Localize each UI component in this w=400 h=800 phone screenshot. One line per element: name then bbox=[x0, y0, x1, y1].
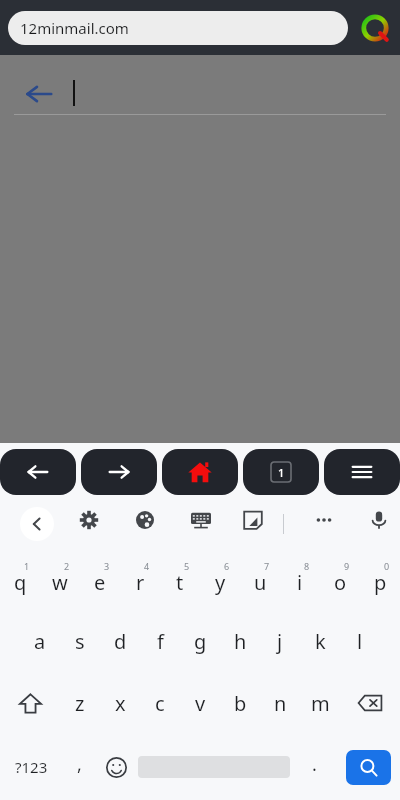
staticText: a bbox=[34, 628, 46, 655]
button[interactable]: 0 bbox=[360, 548, 400, 610]
staticText: g bbox=[194, 628, 207, 655]
button[interactable]: m bbox=[300, 672, 340, 734]
staticText: j bbox=[277, 628, 283, 655]
staticText: 3 bbox=[104, 560, 110, 572]
button[interactable]: . bbox=[292, 734, 336, 800]
staticText: 5 bbox=[184, 560, 190, 572]
button[interactable]: h bbox=[220, 610, 260, 672]
button[interactable]: 8 bbox=[280, 548, 320, 610]
staticText: d bbox=[114, 628, 127, 655]
button[interactable]: 9 bbox=[320, 548, 360, 610]
button[interactable]: n bbox=[260, 672, 300, 734]
button[interactable]: 4 bbox=[120, 548, 160, 610]
button[interactable]: Forward bbox=[81, 449, 157, 495]
button[interactable]: 7 bbox=[240, 548, 280, 610]
button[interactable]: Keyboard layout bbox=[184, 500, 218, 540]
staticText: r bbox=[136, 569, 145, 596]
button[interactable]: l bbox=[340, 610, 380, 672]
button[interactable]: Space bbox=[136, 734, 292, 800]
button[interactable]: Shift bbox=[0, 672, 60, 734]
button[interactable]: s bbox=[60, 610, 100, 672]
button[interactable]: f bbox=[140, 610, 180, 672]
button[interactable]: Resize bbox=[236, 500, 270, 540]
button[interactable]: 5 bbox=[160, 548, 200, 610]
button[interactable]: 3 bbox=[80, 548, 120, 610]
staticText: ?123 bbox=[15, 757, 48, 777]
staticText: p bbox=[374, 569, 387, 596]
staticText: i bbox=[297, 569, 303, 596]
button[interactable]: Back bbox=[22, 77, 56, 111]
button[interactable]: 2 bbox=[40, 548, 80, 610]
button[interactable]: 12minmail.com bbox=[8, 11, 348, 45]
button[interactable]: Previous bbox=[20, 507, 54, 541]
button[interactable]: Search bbox=[346, 750, 391, 785]
staticText: z bbox=[75, 690, 85, 717]
staticText: 2 bbox=[64, 560, 70, 572]
staticText: t bbox=[176, 569, 184, 596]
button[interactable]: , bbox=[62, 734, 96, 800]
staticText: m bbox=[311, 690, 330, 717]
button[interactable]: x bbox=[100, 672, 140, 734]
button[interactable]: z bbox=[60, 672, 100, 734]
button[interactable]: ?123 bbox=[0, 734, 62, 800]
staticText: v bbox=[195, 690, 206, 717]
staticText: 6 bbox=[224, 560, 230, 572]
button[interactable]: b bbox=[220, 672, 260, 734]
staticText: u bbox=[254, 569, 267, 596]
staticText: o bbox=[334, 569, 347, 596]
staticText: x bbox=[115, 690, 126, 717]
staticText: s bbox=[75, 628, 85, 655]
button[interactable]: Emoji bbox=[96, 734, 136, 800]
staticText: c bbox=[155, 690, 165, 717]
button[interactable]: Theme bbox=[128, 500, 162, 540]
staticText: f bbox=[157, 628, 164, 655]
button[interactable]: c bbox=[140, 672, 180, 734]
button[interactable]: g bbox=[180, 610, 220, 672]
staticText: 4 bbox=[144, 560, 150, 572]
staticText: 0 bbox=[384, 560, 390, 572]
button[interactable]: 1 bbox=[0, 548, 40, 610]
button[interactable]: d bbox=[100, 610, 140, 672]
staticText: k bbox=[315, 628, 326, 655]
button[interactable]: Menu bbox=[324, 449, 400, 495]
button[interactable]: Voice input bbox=[362, 500, 396, 540]
button[interactable]: j bbox=[260, 610, 300, 672]
button[interactable]: More options bbox=[307, 500, 341, 540]
staticText: 12minmail.com bbox=[20, 18, 129, 38]
staticText: , bbox=[77, 752, 82, 777]
button[interactable]: 6 bbox=[200, 548, 240, 610]
button[interactable]: Settings bbox=[72, 500, 106, 540]
staticText: 1 bbox=[24, 560, 30, 572]
staticText: q bbox=[14, 569, 27, 596]
staticText: 8 bbox=[304, 560, 310, 572]
button[interactable]: Browser logo bbox=[358, 11, 392, 45]
staticText: l bbox=[357, 628, 363, 655]
button[interactable]: Tabs bbox=[243, 449, 319, 495]
button[interactable]: Backspace bbox=[340, 672, 400, 734]
staticText: 1 bbox=[278, 465, 285, 480]
button[interactable]: Back bbox=[0, 449, 76, 495]
staticText: w bbox=[52, 569, 68, 596]
button[interactable]: k bbox=[300, 610, 340, 672]
staticText: y bbox=[215, 569, 226, 596]
button[interactable]: Home bbox=[162, 449, 238, 495]
staticText: 7 bbox=[264, 560, 270, 572]
button[interactable]: v bbox=[180, 672, 220, 734]
staticText: 9 bbox=[344, 560, 350, 572]
staticText: n bbox=[274, 690, 287, 717]
staticText: . bbox=[312, 752, 317, 777]
staticText: b bbox=[234, 690, 247, 717]
staticText: e bbox=[94, 569, 106, 596]
staticText: h bbox=[234, 628, 247, 655]
button[interactable]: a bbox=[20, 610, 60, 672]
